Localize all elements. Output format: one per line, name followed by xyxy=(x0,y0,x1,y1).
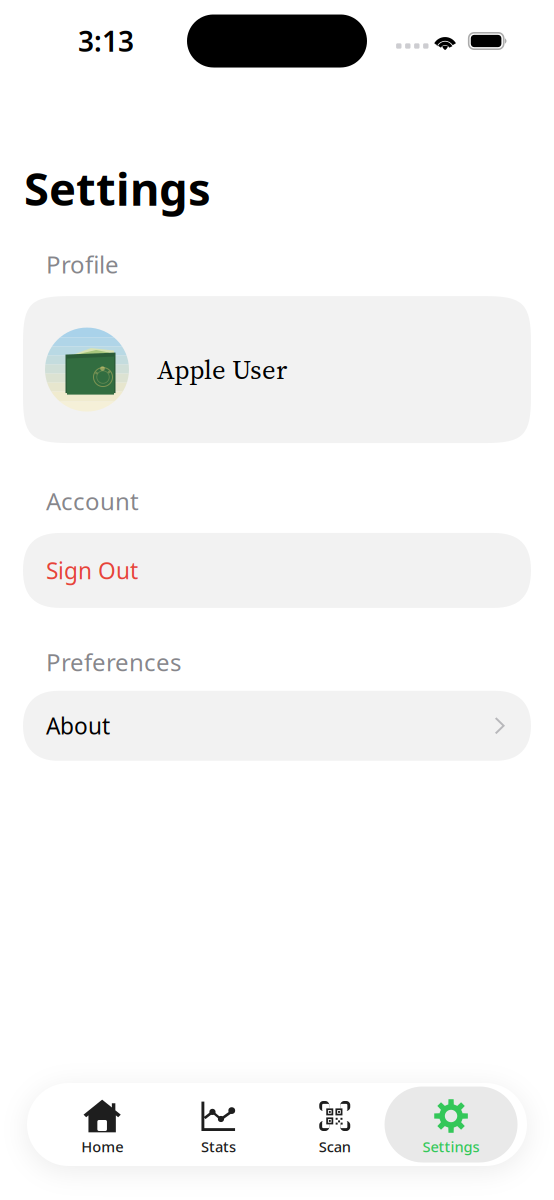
staticText: Preferences xyxy=(46,646,181,678)
staticText: Settings xyxy=(422,1137,479,1156)
button[interactable]: Scan xyxy=(277,1083,393,1166)
button[interactable]: Settings xyxy=(393,1083,509,1166)
staticText: About xyxy=(46,711,110,741)
staticText: Scan xyxy=(319,1137,351,1156)
staticText: Sign Out xyxy=(46,555,138,585)
staticText: Account xyxy=(46,485,139,517)
staticText: Settings xyxy=(24,158,211,218)
button[interactable]: About xyxy=(23,691,531,761)
staticText: Home xyxy=(81,1137,123,1156)
staticText: Apple User xyxy=(157,351,287,388)
button[interactable]: Apple User xyxy=(23,296,531,443)
staticText: Stats xyxy=(201,1137,236,1156)
staticText: Profile xyxy=(46,248,119,280)
button[interactable]: Sign Out xyxy=(23,533,531,608)
staticText: 3:13 xyxy=(78,22,134,60)
button[interactable]: Stats xyxy=(160,1083,277,1166)
button[interactable]: Home xyxy=(44,1083,160,1166)
